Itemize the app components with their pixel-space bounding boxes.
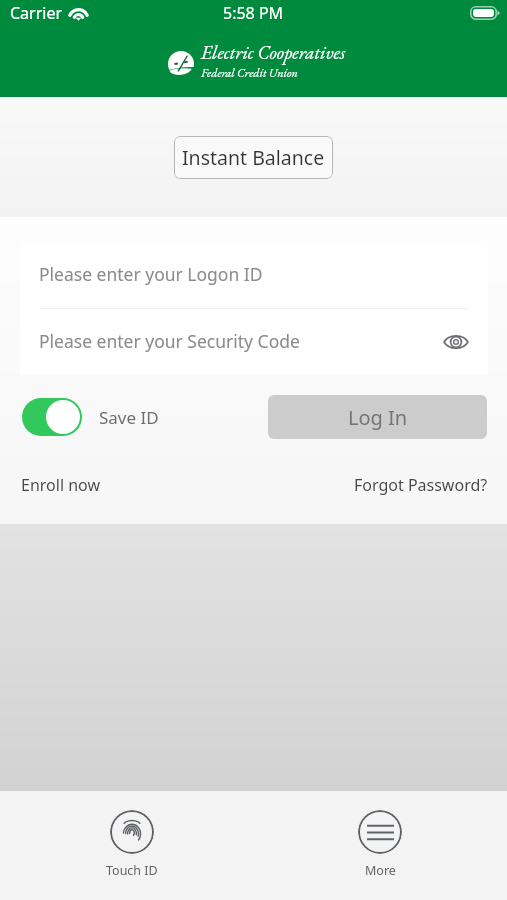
staticText: Please enter your Logon ID (39, 262, 263, 286)
staticText: Please enter your Security Code (39, 329, 300, 353)
button[interactable]: Show password (438, 324, 474, 360)
button[interactable]: More (342, 791, 418, 887)
staticText: Forgot Password? (354, 474, 488, 496)
staticText: Carrier (10, 2, 63, 24)
button[interactable]: Log In (268, 395, 487, 439)
staticText: Instant Balance (182, 144, 325, 171)
staticText: 5:58 PM (223, 2, 284, 24)
button[interactable]: Enroll now (21, 474, 100, 496)
staticText: Log In (348, 404, 408, 431)
staticText: Enroll now (21, 474, 100, 496)
button[interactable]: Save ID (22, 398, 159, 436)
button[interactable]: Instant Balance (174, 136, 333, 179)
button[interactable]: Touch ID (90, 791, 174, 887)
staticText: Touch ID (106, 862, 158, 879)
staticText: Save ID (99, 406, 159, 429)
button[interactable]: Forgot Password? (354, 474, 488, 496)
button[interactable]: Please enter your Security Code (20, 309, 488, 375)
staticText: More (365, 862, 396, 879)
button[interactable]: Please enter your Logon ID (20, 241, 488, 308)
staticText: Electric Cooperatives (201, 40, 346, 65)
button[interactable]: Electric Cooperatives Federal Credit Uni… (168, 40, 346, 81)
staticText: Federal Credit Union (201, 65, 298, 81)
